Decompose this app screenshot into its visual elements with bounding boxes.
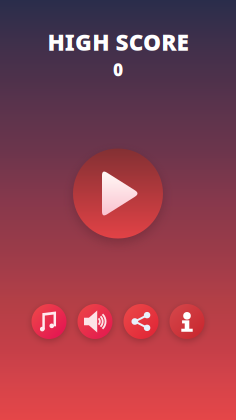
button[interactable]: Play bbox=[73, 148, 163, 238]
button[interactable]: Share bbox=[123, 304, 158, 339]
staticText: 0 bbox=[113, 58, 123, 81]
button[interactable]: Music bbox=[31, 304, 66, 339]
button[interactable]: Info bbox=[169, 304, 204, 339]
button[interactable]: Sound bbox=[77, 304, 112, 339]
staticText: HIGH SCORE bbox=[48, 27, 188, 57]
